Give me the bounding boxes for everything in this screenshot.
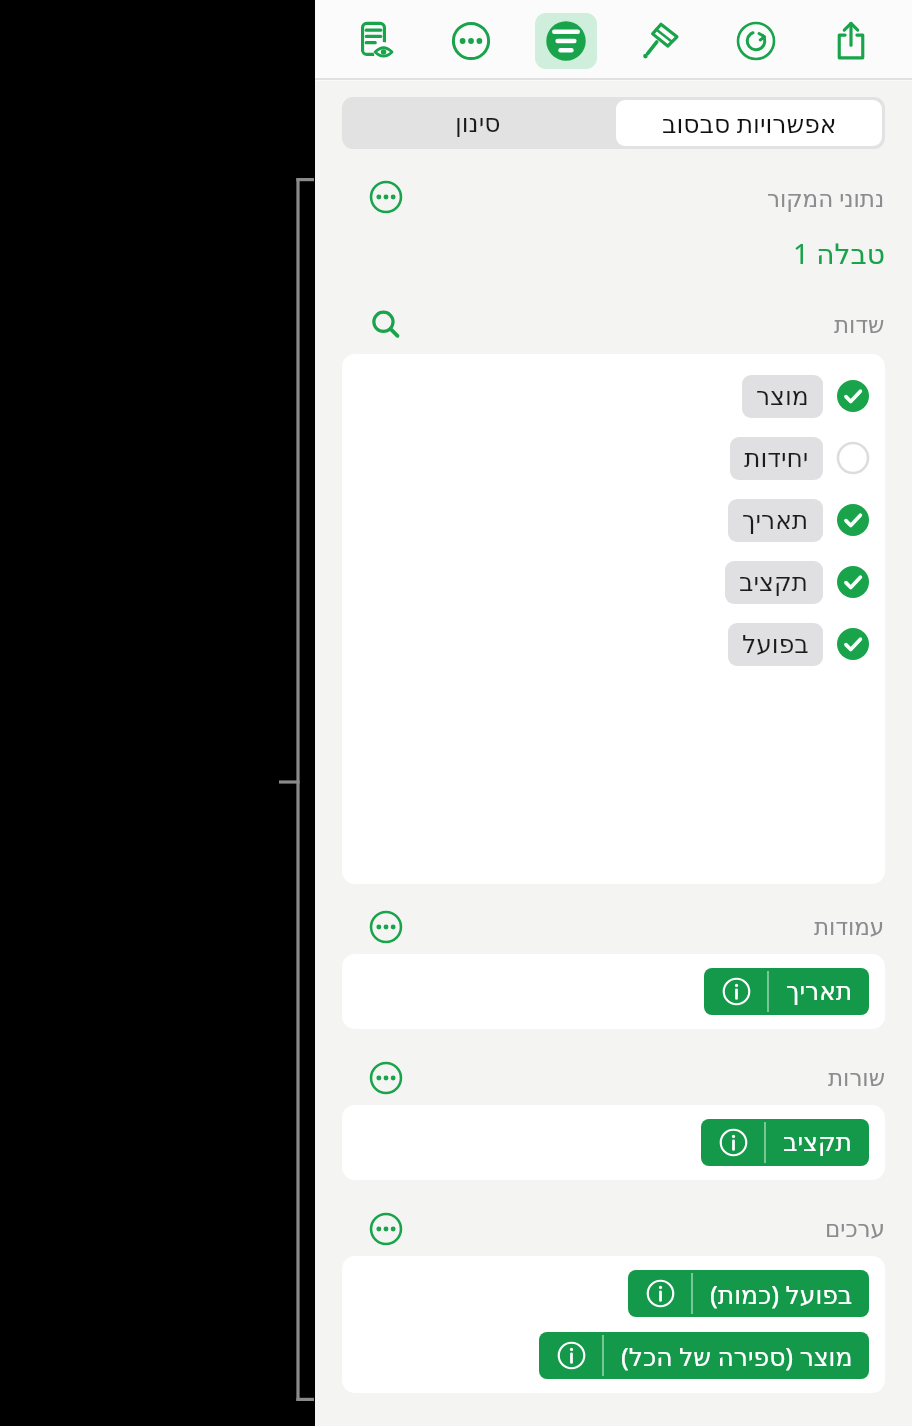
button[interactable]: More: [365, 176, 407, 218]
staticText: תאריך: [742, 506, 809, 535]
staticText: סינון: [455, 109, 501, 138]
button[interactable]: Info מוצר (ספירה של הכל): [539, 1332, 603, 1379]
button[interactable]: Info תקציב: [701, 1119, 869, 1166]
button[interactable]: תקציב: [342, 551, 885, 613]
button[interactable]: אפשרויות סבסוב: [616, 100, 882, 146]
staticText: שורות: [828, 1065, 885, 1092]
staticText: נתוני המקור: [767, 182, 885, 213]
button[interactable]: Format: [630, 13, 692, 69]
staticText: תקציב: [783, 1128, 853, 1157]
staticText: תאריך: [786, 977, 853, 1006]
button[interactable]: Info מוצר (ספירה של הכל): [539, 1332, 869, 1379]
button[interactable]: Search: [365, 304, 407, 346]
button[interactable]: More: [365, 1057, 407, 1099]
button[interactable]: Info בפועל (כמות): [628, 1270, 692, 1317]
button[interactable]: More: [365, 906, 407, 948]
staticText: מוצר (ספירה של הכל): [621, 1339, 853, 1373]
button[interactable]: More: [365, 1208, 407, 1250]
button[interactable]: בפועל: [342, 613, 885, 675]
button[interactable]: יחידות: [342, 427, 885, 489]
button[interactable]: Info בפועל (כמות): [628, 1270, 869, 1317]
button[interactable]: Info תקציב: [701, 1119, 765, 1166]
staticText: טבלה 1: [793, 234, 885, 272]
staticText: שדות: [834, 312, 885, 339]
button[interactable]: מוצר: [342, 365, 885, 427]
staticText: אפשרויות סבסוב: [662, 106, 837, 140]
staticText: תקציב: [739, 568, 809, 597]
button[interactable]: תאריך: [342, 489, 885, 551]
button[interactable]: Info תאריך: [704, 968, 768, 1015]
staticText: מוצר: [756, 382, 809, 411]
button[interactable]: סינון: [342, 97, 613, 149]
button[interactable]: Redo: [725, 13, 787, 69]
staticText: עמודות: [814, 914, 885, 941]
button[interactable]: More options: [440, 13, 502, 69]
staticText: ערכים: [825, 1216, 885, 1243]
button[interactable]: Share: [820, 13, 882, 69]
staticText: בפועל: [742, 630, 809, 659]
staticText: יחידות: [744, 444, 809, 473]
button[interactable]: Organize: [535, 13, 597, 69]
button[interactable]: Document view: [345, 13, 407, 69]
staticText: בפועל (כמות): [710, 1277, 853, 1311]
button[interactable]: Info תאריך: [704, 968, 869, 1015]
